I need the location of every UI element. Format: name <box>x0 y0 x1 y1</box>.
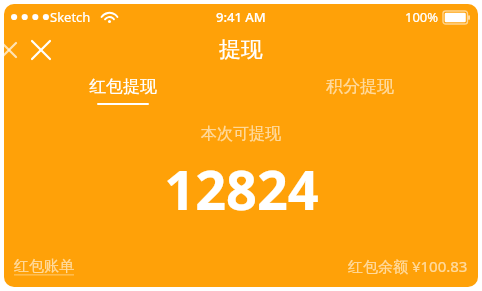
button[interactable]: Back <box>4 35 24 65</box>
button[interactable]: 红包账单 <box>14 255 74 278</box>
staticText: 提现 <box>219 36 263 64</box>
staticText: 100% <box>405 8 439 26</box>
staticText: 9:41 AM <box>216 8 266 26</box>
staticText: 本次可提现 <box>201 124 281 144</box>
button[interactable]: 红包提现 <box>4 70 241 110</box>
staticText: 12824 <box>164 152 319 226</box>
staticText: 红包余额 ¥100.83 <box>348 256 468 276</box>
staticText: 红包提现 <box>89 76 157 97</box>
staticText: 积分提现 <box>326 76 394 97</box>
staticText: Sketch <box>50 8 91 26</box>
button[interactable]: Close <box>27 36 55 64</box>
staticText: 红包账单 <box>14 257 74 276</box>
button[interactable]: 积分提现 <box>241 70 478 110</box>
button[interactable]: 红包余额 ¥100.83 <box>348 254 468 278</box>
